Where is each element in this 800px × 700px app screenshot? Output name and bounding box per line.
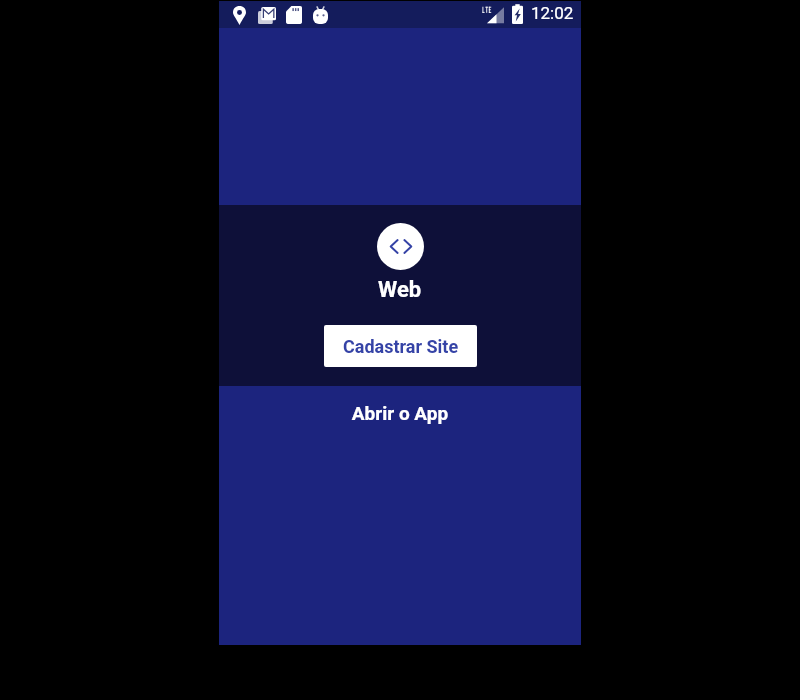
other: Location — [233, 6, 246, 25]
staticText: Cadastrar Site — [343, 336, 459, 357]
other: Battery charging — [512, 4, 523, 24]
other: LTE signal — [482, 4, 504, 25]
button[interactable]: Web — [377, 223, 424, 270]
other: Android — [313, 6, 328, 24]
staticText: Abrir o App — [219, 402, 581, 424]
other: SD card — [286, 6, 302, 24]
staticText: Web — [378, 277, 422, 303]
button[interactable]: Abrir o App — [219, 402, 581, 430]
other: Gmail — [258, 7, 276, 24]
button[interactable]: Cadastrar Site — [324, 325, 477, 367]
staticText: 12:02 — [531, 3, 574, 23]
